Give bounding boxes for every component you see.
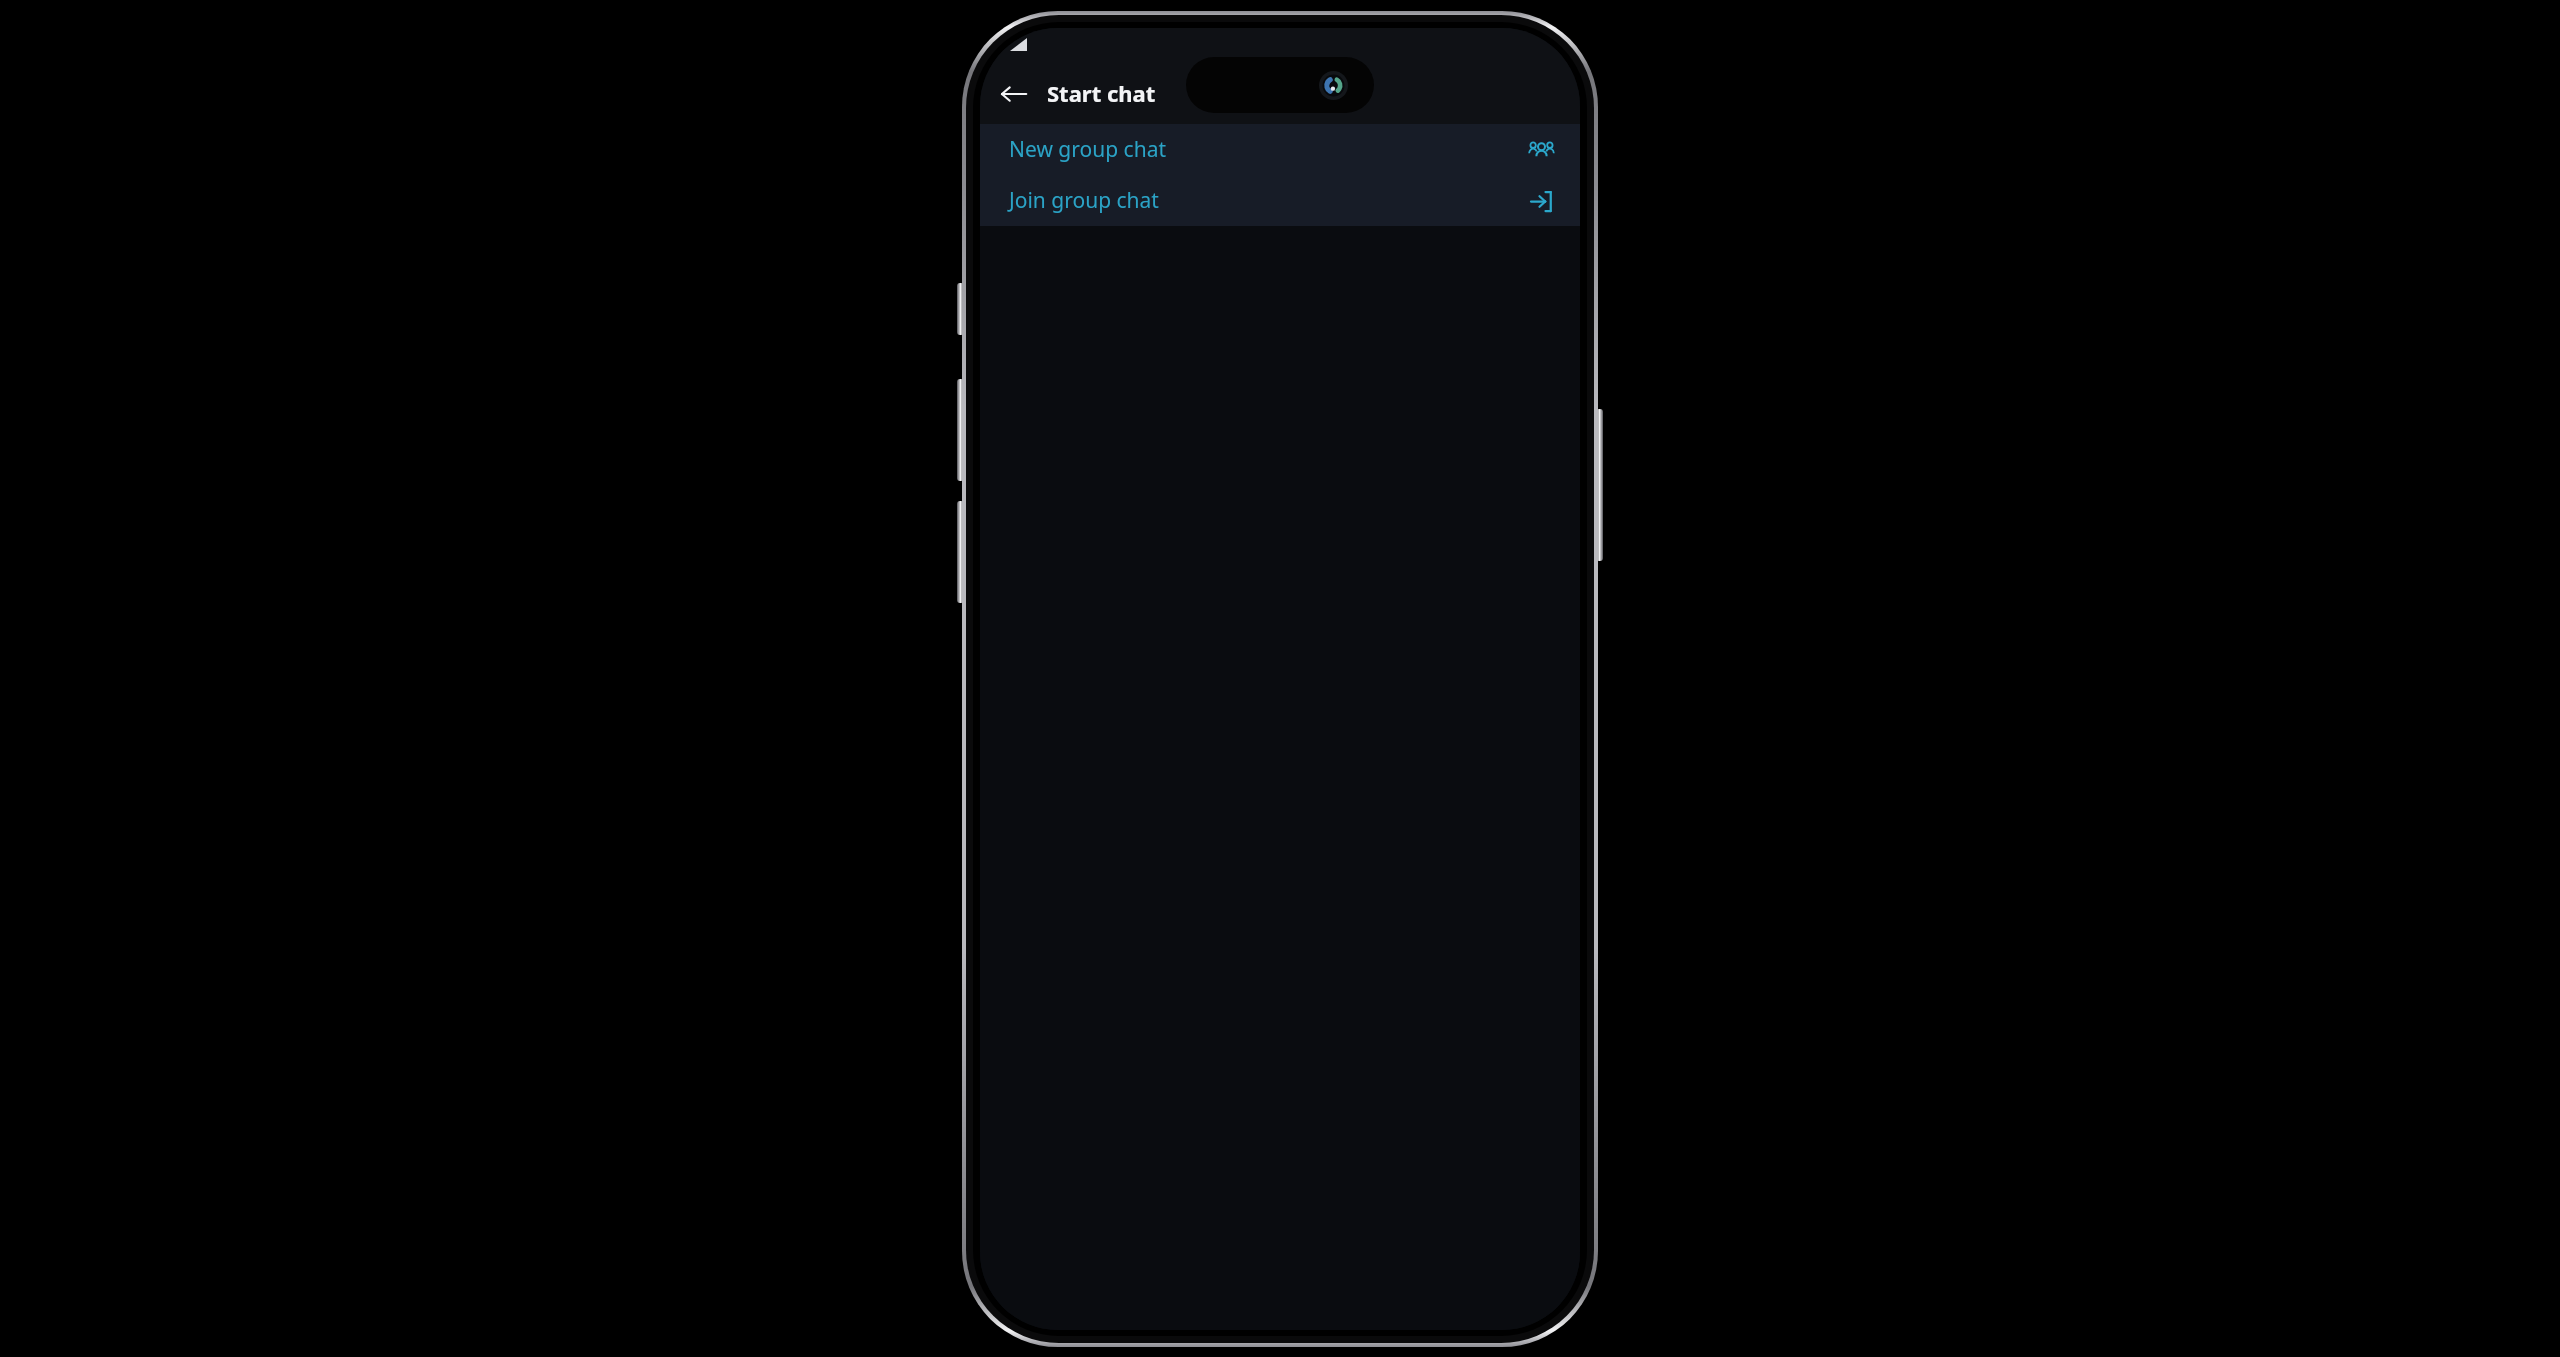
other: Create new group chat <box>1526 135 1556 165</box>
button[interactable]: Join group chat <box>980 175 1580 226</box>
other: Join an existing group chat <box>1526 186 1556 216</box>
button[interactable]: Back <box>985 65 1041 121</box>
staticText: Join group chat <box>1009 186 1526 215</box>
button[interactable]: New group chat <box>980 124 1580 175</box>
staticText: New group chat <box>1009 135 1526 164</box>
staticText: Start chat <box>1047 78 1156 108</box>
